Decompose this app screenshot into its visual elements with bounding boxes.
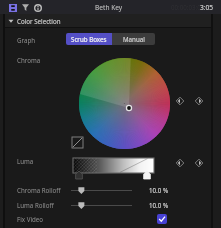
button[interactable]: Scrub Boxes [66,33,112,45]
button[interactable]: Sample colour [72,137,83,148]
staticText: Manual [123,35,145,43]
button[interactable]: Previous keyframe [175,96,185,106]
button[interactable]: Next keyframe [194,96,204,106]
staticText: Scrub Boxes [71,35,107,43]
button[interactable]: Manual [112,33,155,45]
button[interactable]: Fix Video checkbox [157,214,167,224]
button[interactable]: Filter [19,1,32,14]
button[interactable]: Luma range [73,158,154,173]
staticText: 10.0 % [149,186,169,194]
staticText: Fix Video [17,215,44,223]
staticText: Luma [17,157,34,165]
button[interactable]: Info [31,1,44,14]
button[interactable]: Slider [68,201,132,210]
staticText: Luma Rolloff [17,201,54,209]
button[interactable]: Chroma colour wheel [79,58,170,149]
button[interactable] [0,14,221,27]
staticText: Beth Key [95,3,123,12]
button[interactable]: Next keyframe [194,158,204,168]
staticText: Graph [17,36,36,44]
staticText: 3:05 [200,3,214,12]
staticText: Color Selection [17,17,61,25]
staticText: Chroma Rolloff [17,186,61,194]
staticText: 10.0 % [149,201,169,209]
staticText: Chroma [17,56,41,64]
button[interactable]: Previous keyframe [175,158,185,168]
button[interactable]: Slider [68,186,132,195]
staticText: 00:00:03:05 [171,3,205,11]
button[interactable]: Clip [6,1,19,14]
